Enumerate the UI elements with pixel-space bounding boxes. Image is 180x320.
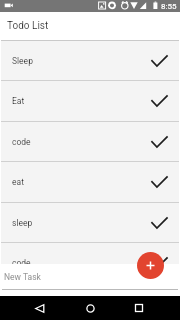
staticText: New Task xyxy=(4,272,41,282)
staticText: Todo List xyxy=(7,20,49,32)
button[interactable]: code xyxy=(1,243,179,264)
button[interactable]: sleep xyxy=(1,203,179,242)
staticText: Eat xyxy=(12,96,152,106)
button[interactable]: Home xyxy=(72,296,108,320)
button[interactable]: Add task xyxy=(137,252,164,279)
staticText: 8:55 xyxy=(161,2,177,11)
button[interactable]: Sleep xyxy=(1,41,179,80)
button[interactable]: Recent apps xyxy=(121,296,157,320)
staticText: sleep xyxy=(12,218,152,228)
staticText: eat xyxy=(12,177,152,187)
staticText: code xyxy=(12,258,152,264)
button[interactable]: code xyxy=(1,122,179,161)
staticText: Sleep xyxy=(12,56,152,66)
button[interactable]: Eat xyxy=(1,81,179,121)
button[interactable]: Back xyxy=(22,296,58,320)
button[interactable]: eat xyxy=(1,162,179,202)
staticText: code xyxy=(12,137,152,147)
